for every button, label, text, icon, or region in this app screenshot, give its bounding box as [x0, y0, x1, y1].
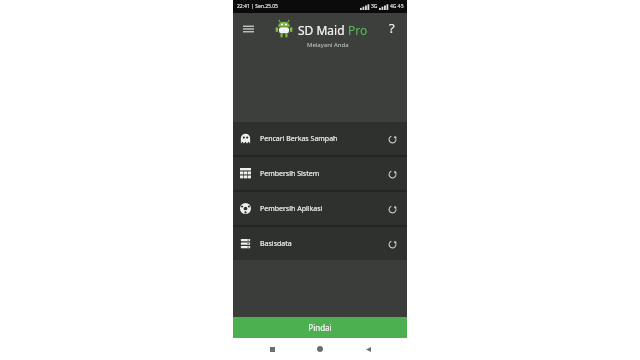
- button[interactable]: Pencari Berkas Sampah: [233, 122, 407, 155]
- button[interactable]: Menu: [238, 19, 258, 39]
- button[interactable]: Recents: [263, 340, 281, 358]
- button[interactable]: Pindai: [233, 317, 407, 338]
- staticText: SD Maid: [298, 22, 348, 38]
- button[interactable]: Home: [311, 340, 329, 358]
- staticText: Pencari Berkas Sampah: [260, 134, 384, 144]
- button[interactable]: Pembersih Sistem: [233, 157, 407, 190]
- staticText: 3G: [371, 3, 378, 10]
- button[interactable]: Refresh: [384, 236, 400, 252]
- staticText: Pindai: [308, 322, 332, 333]
- staticText: ?: [389, 19, 395, 37]
- staticText: 4G 45: [390, 3, 404, 10]
- staticText: 22:41 | Sen.25.05: [237, 3, 278, 10]
- button[interactable]: Back: [359, 340, 377, 358]
- staticText: Pembersih Aplikasi: [260, 204, 384, 214]
- staticText: Basisdata: [260, 239, 384, 249]
- button[interactable]: Help: [382, 18, 402, 38]
- staticText: Pro: [348, 22, 368, 38]
- button[interactable]: Refresh: [384, 131, 400, 147]
- staticText: Melayani Anda: [307, 41, 349, 49]
- button[interactable]: Basisdata: [233, 227, 407, 260]
- button[interactable]: Refresh: [384, 166, 400, 182]
- button[interactable]: Refresh: [384, 201, 400, 217]
- button[interactable]: Pembersih Aplikasi: [233, 192, 407, 225]
- staticText: Pembersih Sistem: [260, 169, 384, 179]
